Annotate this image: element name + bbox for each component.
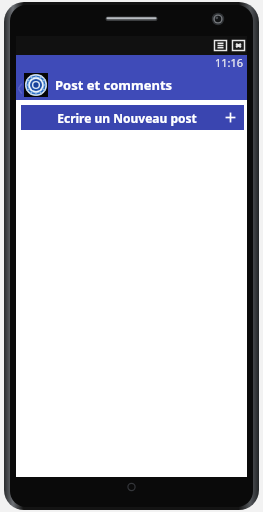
- button[interactable]: Back: [16, 70, 23, 100]
- button[interactable]: App icon: [24, 73, 48, 97]
- staticText: 11:16: [215, 55, 244, 70]
- staticText: Post et comments: [55, 76, 173, 94]
- staticText: Ecrire un Nouveau post: [29, 110, 225, 126]
- button[interactable]: Ecrire un Nouveau post: [21, 105, 244, 130]
- button[interactable]: Close: [231, 39, 246, 52]
- button[interactable]: Menu: [213, 39, 228, 52]
